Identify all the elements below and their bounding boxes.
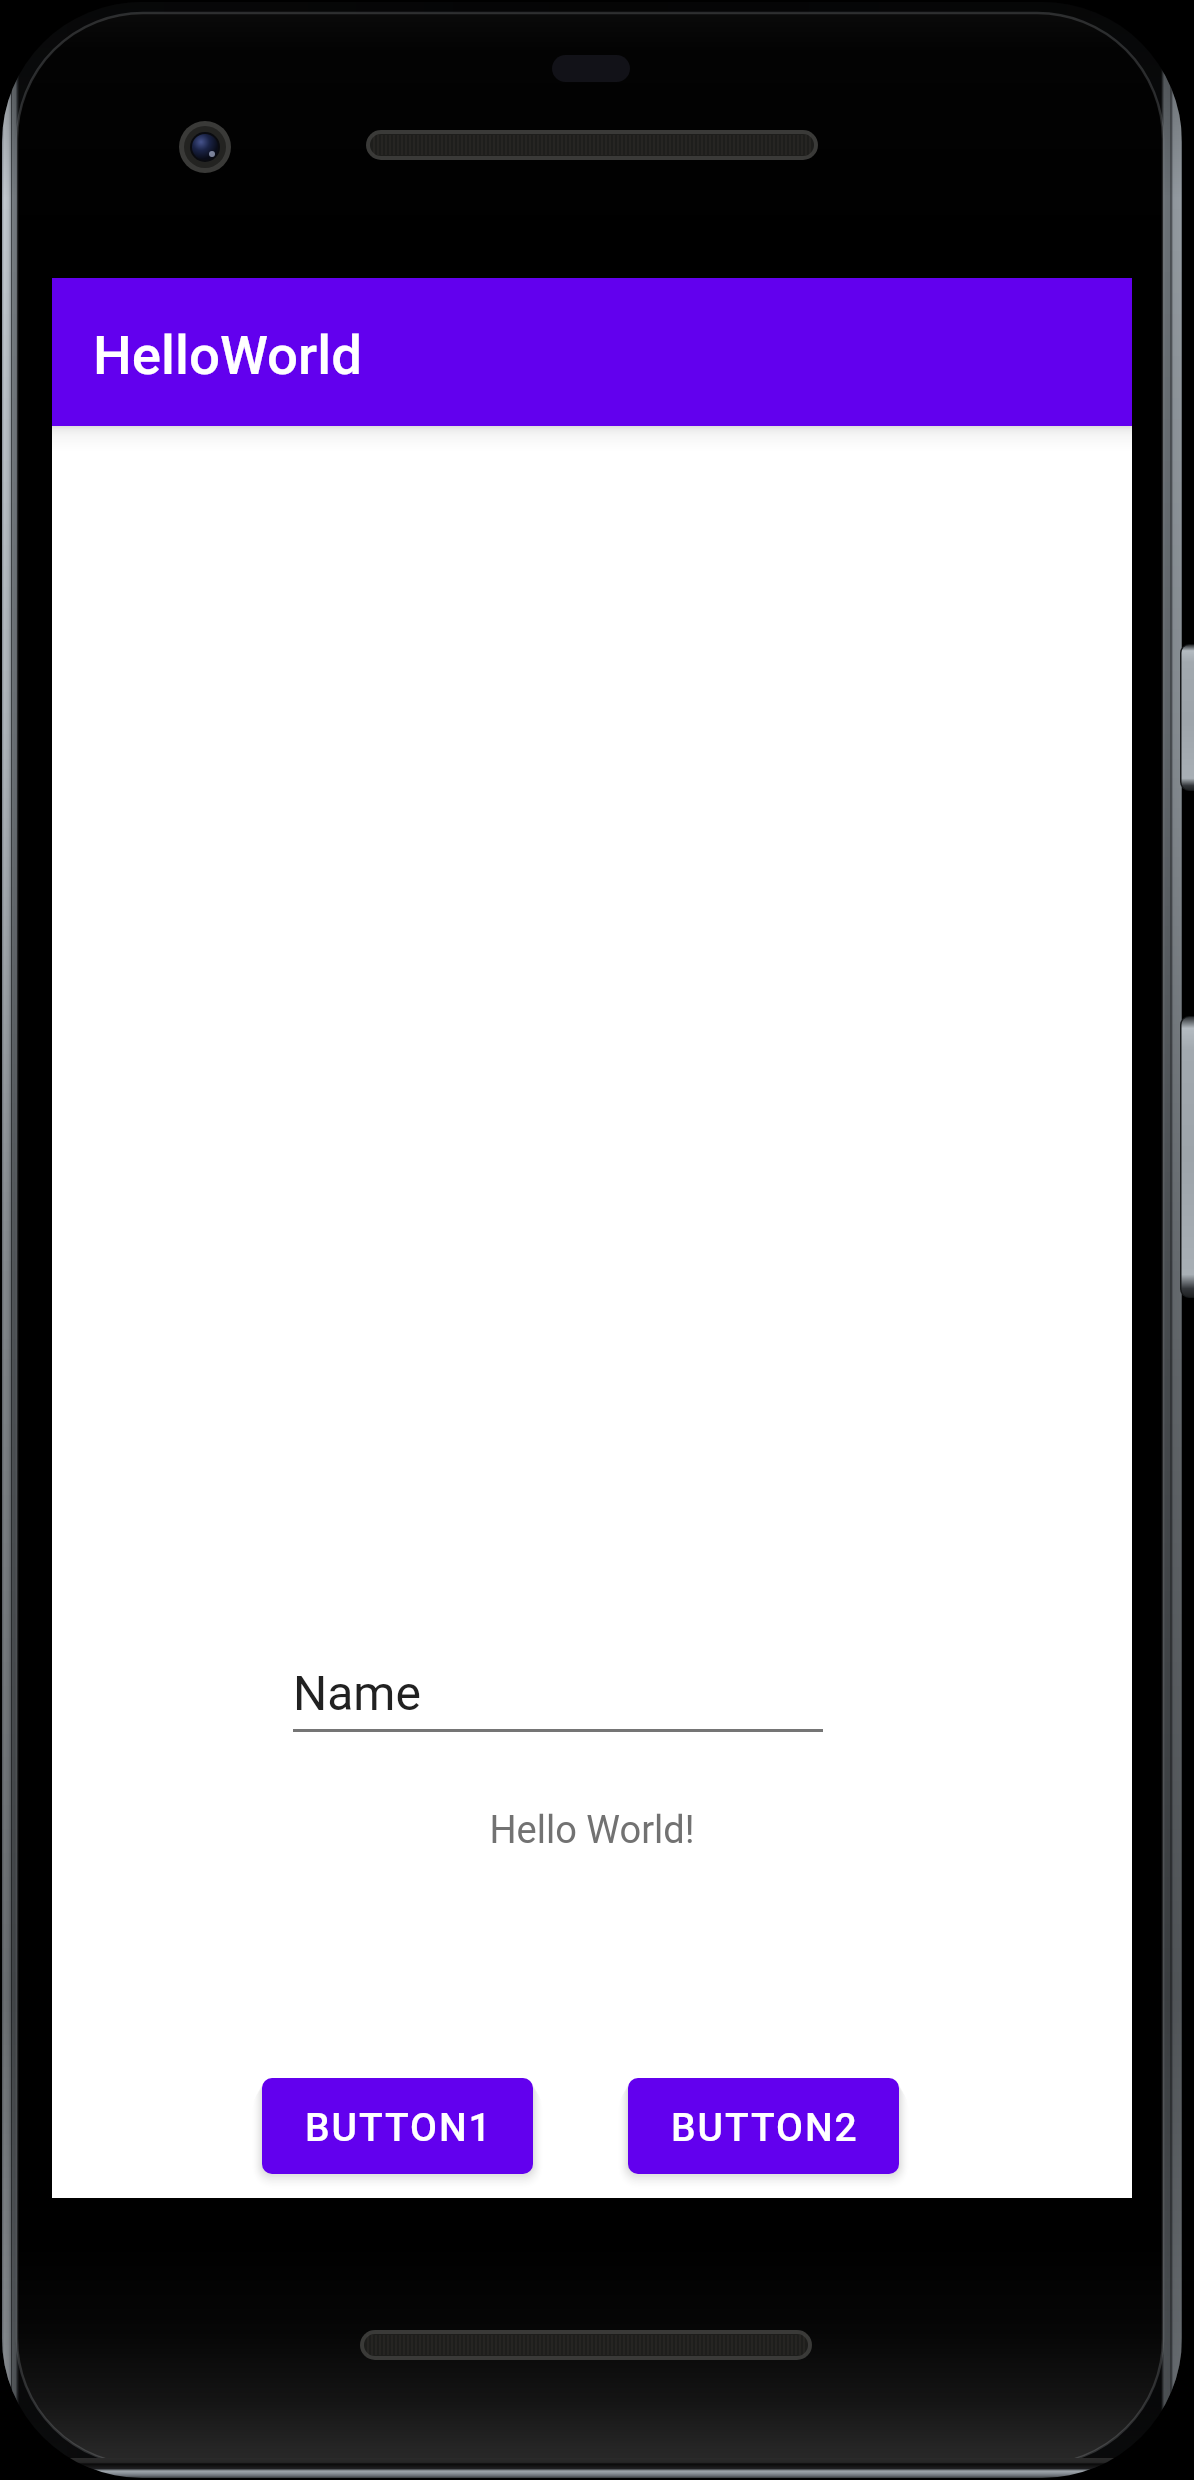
button[interactable]: Name	[293, 1665, 823, 1735]
staticText: Hello World!	[52, 1808, 1132, 1853]
button[interactable]: Volume	[1178, 1017, 1194, 1297]
button[interactable]: BUTTON2	[628, 2078, 899, 2174]
staticText: HelloWorld	[93, 323, 362, 387]
staticText: Name	[293, 1665, 421, 1721]
button[interactable]: HelloWorld	[52, 278, 1132, 426]
staticText: BUTTON1	[305, 2105, 493, 2151]
staticText: BUTTON2	[671, 2105, 859, 2151]
button[interactable]: Power	[1178, 645, 1194, 790]
button[interactable]: BUTTON1	[262, 2078, 533, 2174]
